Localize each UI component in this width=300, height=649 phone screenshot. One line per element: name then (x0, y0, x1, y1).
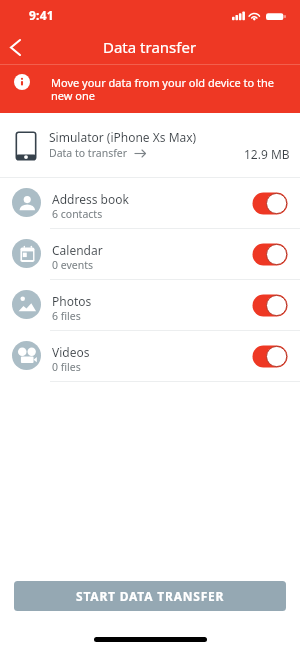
button[interactable]: START DATA TRANSFER (14, 581, 286, 611)
button[interactable]: Address book (0, 178, 300, 228)
staticText: START DATA TRANSFER (76, 588, 225, 604)
button[interactable]: Toggle Photos (250, 290, 290, 320)
staticText: Move your data from your old device to t… (51, 75, 290, 104)
staticText: Data transfer (103, 37, 197, 57)
staticText: Videos (52, 344, 90, 360)
button[interactable]: Simulator (iPhone Xs Max) (0, 113, 300, 177)
staticText: Calendar (52, 242, 103, 258)
staticText: 6 files (52, 309, 81, 323)
button[interactable]: Videos (0, 331, 300, 381)
staticText: 9:41 (29, 7, 54, 23)
button[interactable]: Calendar (0, 229, 300, 279)
staticText: 0 files (52, 360, 81, 374)
staticText: 6 contacts (52, 207, 103, 221)
staticText: Simulator (iPhone Xs Max) (49, 129, 197, 145)
staticText: Data to transfer (49, 146, 128, 160)
staticText: 12.9 MB (244, 146, 290, 162)
staticText: Photos (52, 293, 92, 309)
button[interactable]: Back (1, 30, 29, 64)
button[interactable]: Toggle Calendar (250, 239, 290, 269)
staticText: 0 events (52, 258, 94, 272)
staticText: Address book (52, 191, 129, 207)
button[interactable]: Photos (0, 280, 300, 330)
button[interactable]: Toggle Videos (250, 341, 290, 371)
button[interactable]: Toggle Address book (250, 188, 290, 218)
